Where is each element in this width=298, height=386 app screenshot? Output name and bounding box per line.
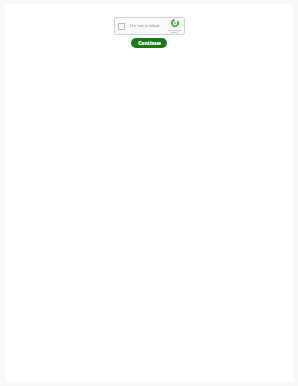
staticText: Continue [138, 40, 161, 47]
staticText: I'm not a robot [130, 23, 168, 29]
staticText: Privacy - Terms [168, 31, 181, 34]
button[interactable]: I'm not a robot [114, 17, 185, 35]
button[interactable]: Continue [131, 38, 167, 48]
other: reCAPTCHA [168, 19, 181, 34]
staticText: reCAPTCHA [168, 28, 181, 31]
